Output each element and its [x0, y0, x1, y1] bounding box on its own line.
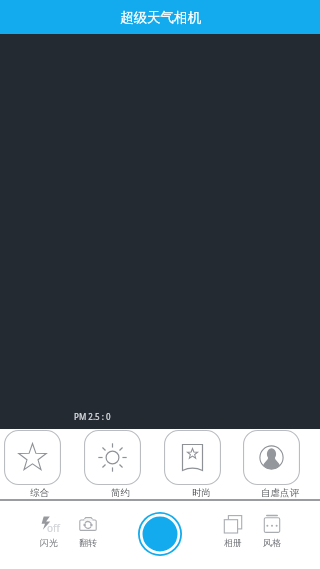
- button[interactable]: 翻转: [68, 515, 108, 548]
- staticText: 风格: [263, 537, 281, 548]
- staticText: 简约: [111, 487, 130, 499]
- button[interactable]: 简约: [84, 430, 141, 485]
- button[interactable]: Shutter: [138, 512, 182, 556]
- staticText: PM 2.5 : 0: [74, 411, 111, 422]
- staticText: off: [47, 521, 60, 535]
- button[interactable]: 时尚: [164, 430, 221, 485]
- staticText: 超级天气相机: [120, 9, 201, 26]
- staticText: 时尚: [192, 487, 211, 499]
- staticText: 综合: [30, 487, 49, 499]
- staticText: 自虐点评: [261, 487, 299, 499]
- button[interactable]: 相册: [213, 515, 253, 548]
- staticText: 相册: [224, 537, 242, 548]
- staticText: 翻转: [79, 537, 97, 548]
- button[interactable]: 闪光: [29, 515, 69, 548]
- button[interactable]: 自虐点评: [243, 430, 300, 485]
- button[interactable]: 风格: [252, 515, 292, 548]
- staticText: 闪光: [40, 537, 58, 548]
- button[interactable]: 综合: [4, 430, 61, 485]
